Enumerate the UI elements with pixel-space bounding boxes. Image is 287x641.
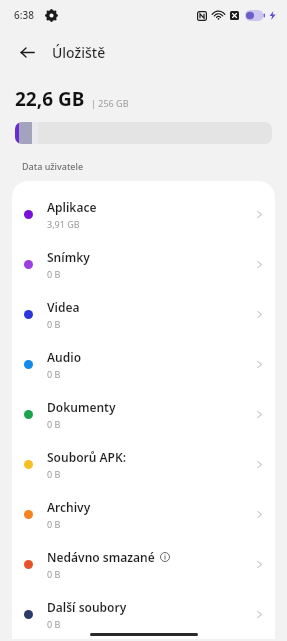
staticText: Úložiště — [52, 43, 106, 62]
staticText: Nedávno smazané — [47, 549, 155, 565]
button[interactable]: Audio — [12, 339, 275, 389]
staticText: Souborů APK: — [47, 449, 127, 465]
button[interactable]: Souborů APK: — [12, 439, 275, 489]
staticText: 0 B — [47, 268, 61, 280]
staticText: 0 B — [47, 518, 61, 530]
button[interactable]: Nedávno smazané — [12, 539, 275, 589]
staticText: Data uživatele — [22, 160, 84, 172]
staticText: 0 B — [47, 418, 61, 430]
button[interactable]: Aplikace — [12, 189, 275, 239]
staticText: Dokumenty — [47, 399, 116, 415]
staticText: Archivy — [47, 499, 91, 515]
staticText: 0 B — [47, 568, 61, 580]
staticText: 0 B — [47, 318, 61, 330]
staticText: Audio — [47, 349, 82, 365]
staticText: 6:38 — [14, 8, 34, 22]
button[interactable]: Back — [14, 39, 40, 65]
staticText: Snímky — [47, 249, 90, 265]
staticText: 0 B — [47, 368, 61, 380]
staticText: 22,6 GB — [15, 86, 85, 112]
staticText: Aplikace — [47, 199, 97, 215]
staticText: Videa — [47, 299, 80, 315]
staticText: 0 B — [47, 468, 61, 480]
staticText: Další soubory — [47, 599, 127, 615]
button[interactable]: Další soubory — [12, 589, 275, 639]
button[interactable]: Dokumenty — [12, 389, 275, 439]
button[interactable]: Videa — [12, 289, 275, 339]
button[interactable]: Snímky — [12, 239, 275, 289]
staticText: 0 B — [47, 618, 61, 630]
staticText: | 256 GB — [91, 97, 129, 109]
other: Settings — [46, 10, 57, 21]
staticText: 3,91 GB — [47, 218, 80, 230]
button[interactable]: Archivy — [12, 489, 275, 539]
